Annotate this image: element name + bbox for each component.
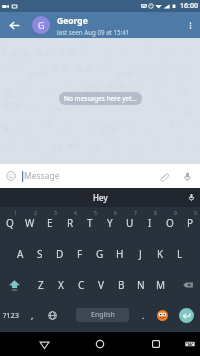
staticText: 5: [94, 210, 97, 217]
button[interactable]: U: [120, 207, 140, 238]
button[interactable]: More options: [180, 12, 200, 38]
button[interactable]: M: [151, 269, 171, 300]
staticText: 4: [74, 210, 77, 217]
button[interactable]: E: [40, 207, 60, 238]
staticText: C: [78, 278, 85, 292]
staticText: L: [177, 247, 183, 261]
button[interactable]: .: [134, 299, 152, 331]
staticText: 8: [154, 210, 157, 217]
button[interactable]: J: [130, 238, 150, 269]
button[interactable]: G: [90, 238, 110, 269]
staticText: 2: [34, 210, 37, 217]
button[interactable]: ?123: [0, 299, 22, 331]
button[interactable]: C: [71, 269, 91, 300]
staticText: 16:00: [180, 1, 198, 11]
staticText: G: [38, 19, 45, 31]
button[interactable]: Enter: [174, 299, 198, 331]
staticText: W: [25, 216, 35, 230]
button[interactable]: K: [150, 238, 170, 269]
staticText: ,: [31, 309, 34, 321]
staticText: George: [57, 15, 88, 27]
staticText: R: [67, 216, 74, 230]
staticText: Q: [6, 216, 14, 230]
staticText: 0: [194, 210, 197, 217]
staticText: S: [37, 247, 43, 261]
button[interactable]: Record voice message: [174, 164, 200, 188]
staticText: 7: [134, 210, 137, 217]
staticText: Message: [24, 170, 60, 182]
staticText: I: [148, 216, 152, 230]
staticText: .: [142, 309, 145, 321]
button[interactable]: G: [32, 16, 50, 34]
button[interactable]: Voice input: [182, 188, 200, 207]
staticText: ?123: [3, 310, 20, 320]
button[interactable]: Q: [0, 207, 20, 238]
button[interactable]: S: [30, 238, 50, 269]
staticText: E: [47, 216, 53, 230]
button[interactable]: Attach file: [152, 164, 174, 188]
staticText: A: [17, 247, 24, 261]
button[interactable]: F: [70, 238, 90, 269]
button[interactable]: W: [20, 207, 40, 238]
staticText: K: [157, 247, 164, 261]
staticText: last seen Aug 09 at 15:41: [57, 28, 130, 36]
button[interactable]: I: [140, 207, 160, 238]
button[interactable]: ,: [23, 299, 41, 331]
button[interactable]: P: [180, 207, 200, 238]
button[interactable]: Back: [0, 12, 28, 38]
staticText: Hey: [93, 192, 108, 203]
staticText: English: [91, 310, 115, 320]
button[interactable]: Switch keyboard: [181, 335, 199, 353]
staticText: J: [139, 247, 142, 261]
button[interactable]: Change keyboard language: [43, 299, 62, 331]
staticText: H: [116, 247, 124, 261]
button[interactable]: V: [91, 269, 111, 300]
button[interactable]: Backspace: [176, 269, 200, 300]
button[interactable]: B: [111, 269, 131, 300]
staticText: 3: [54, 210, 57, 217]
button[interactable]: L: [170, 238, 190, 269]
button[interactable]: D: [50, 238, 70, 269]
button[interactable]: H: [110, 238, 130, 269]
staticText: X: [58, 278, 64, 292]
staticText: D: [56, 247, 64, 261]
button[interactable]: Y: [100, 207, 120, 238]
button[interactable]: Home: [90, 334, 110, 354]
staticText: No messages here yet...: [64, 94, 137, 103]
staticText: P: [187, 216, 194, 230]
staticText: 6: [114, 210, 117, 217]
staticText: Z: [38, 278, 44, 292]
button[interactable]: Recent apps: [146, 334, 166, 354]
button[interactable]: Emoji: [0, 164, 21, 188]
button[interactable]: Back: [34, 334, 54, 354]
staticText: F: [77, 247, 83, 261]
button[interactable]: T: [80, 207, 100, 238]
button[interactable]: Emoji: [153, 299, 172, 331]
staticText: T: [87, 216, 93, 230]
staticText: 1: [14, 210, 17, 217]
button[interactable]: Shift: [4, 269, 25, 300]
staticText: 9: [174, 210, 177, 217]
staticText: B: [118, 278, 125, 292]
staticText: Y: [107, 216, 113, 230]
button[interactable]: R: [60, 207, 80, 238]
button[interactable]: X: [51, 269, 71, 300]
staticText: N: [137, 278, 145, 292]
button[interactable]: No messages here yet...: [59, 92, 142, 105]
staticText: V: [98, 278, 104, 292]
staticText: O: [166, 216, 174, 230]
button[interactable]: Hey: [93, 192, 108, 203]
staticText: M: [156, 278, 166, 292]
staticText: U: [126, 216, 134, 230]
button[interactable]: O: [160, 207, 180, 238]
button[interactable]: N: [131, 269, 151, 300]
staticText: G: [96, 247, 104, 261]
button[interactable]: English: [76, 308, 129, 322]
button[interactable]: Z: [31, 269, 51, 300]
button[interactable]: A: [10, 238, 30, 269]
